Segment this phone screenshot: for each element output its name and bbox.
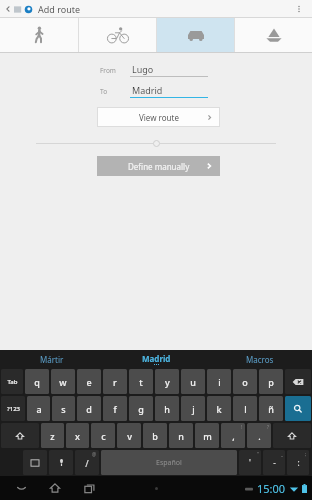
button[interactable]: Shift xyxy=(273,423,311,448)
staticText: e xyxy=(86,376,92,388)
button[interactable]: Shift xyxy=(1,423,39,448)
button[interactable]: : xyxy=(287,450,309,475)
staticText: j xyxy=(192,403,195,415)
button[interactable]: b xyxy=(143,423,167,448)
staticText: c xyxy=(101,430,106,442)
button[interactable]: Español xyxy=(101,450,237,475)
staticText: z xyxy=(50,430,55,442)
staticText: p xyxy=(268,376,274,388)
button[interactable]: n xyxy=(169,423,193,448)
staticText: From xyxy=(100,66,116,75)
staticText: ! xyxy=(241,424,243,430)
button[interactable]: View route xyxy=(97,107,220,127)
staticText: : xyxy=(297,457,300,468)
button[interactable]: Back xyxy=(4,5,12,13)
staticText: w xyxy=(59,376,67,388)
button[interactable]: j xyxy=(181,396,205,421)
button[interactable]: Search xyxy=(285,396,311,421)
button[interactable]: / xyxy=(75,450,99,475)
staticText: / xyxy=(85,457,89,469)
button[interactable]: i xyxy=(207,369,231,394)
button[interactable]: a xyxy=(27,396,50,421)
button[interactable]: Driving xyxy=(157,18,234,52)
staticText: Español xyxy=(156,458,182,468)
staticText: o xyxy=(242,376,248,388)
staticText: Madrid xyxy=(142,353,171,364)
button[interactable]: Switch keyboard xyxy=(23,450,47,475)
button[interactable]: ñ xyxy=(259,396,283,421)
staticText: ?123 xyxy=(7,405,20,413)
staticText: s xyxy=(61,403,66,415)
button[interactable]: Backspace xyxy=(285,369,311,394)
button[interactable]: Walking xyxy=(0,18,78,52)
button[interactable]: x xyxy=(66,423,89,448)
button[interactable]: r xyxy=(103,369,127,394)
button[interactable]: Home xyxy=(44,477,66,499)
button[interactable]: l xyxy=(233,396,257,421)
button[interactable]: w xyxy=(51,369,75,394)
button[interactable]: u xyxy=(181,369,205,394)
button[interactable]: o xyxy=(233,369,257,394)
staticText: Macros xyxy=(246,354,274,365)
staticText: n xyxy=(178,430,184,442)
staticText: Tab xyxy=(7,378,18,386)
staticText: ' xyxy=(249,457,251,468)
button[interactable]: ' xyxy=(239,450,261,475)
staticText: l xyxy=(244,403,247,415)
staticText: Lugo xyxy=(132,63,154,75)
staticText: , xyxy=(232,430,235,442)
button[interactable]: m xyxy=(195,423,219,448)
staticText: b xyxy=(152,430,158,442)
staticText: View route xyxy=(139,112,179,123)
staticText: t xyxy=(139,376,143,388)
staticText: ? xyxy=(267,424,269,430)
button[interactable]: Boat xyxy=(235,18,312,52)
button[interactable]: - xyxy=(263,450,285,475)
staticText: r xyxy=(113,376,117,388)
staticText: ; xyxy=(305,451,307,457)
staticText: @ xyxy=(92,451,97,457)
button[interactable]: ?123 xyxy=(1,396,25,421)
staticText: Mártir xyxy=(40,354,64,365)
staticText: f xyxy=(113,403,117,415)
staticText: ñ xyxy=(268,403,274,415)
staticText: a xyxy=(36,403,42,415)
button[interactable]: More options xyxy=(290,0,308,18)
staticText: k xyxy=(216,403,222,415)
button[interactable]: d xyxy=(77,396,101,421)
button[interactable]: Recent apps xyxy=(78,477,100,499)
button[interactable]: k xyxy=(207,396,231,421)
button[interactable]: Macros xyxy=(208,350,312,368)
button[interactable]: p xyxy=(259,369,283,394)
button[interactable]: , xyxy=(221,423,245,448)
staticText: m xyxy=(203,430,212,442)
button[interactable]: z xyxy=(41,423,64,448)
button[interactable]: Mártir xyxy=(0,350,104,368)
button[interactable]: Voice input xyxy=(49,450,73,475)
staticText: u xyxy=(190,376,196,388)
button[interactable]: q xyxy=(25,369,49,394)
staticText: y xyxy=(165,376,170,388)
button[interactable]: c xyxy=(91,423,115,448)
button[interactable]: Define manually xyxy=(97,156,220,176)
button[interactable]: . xyxy=(247,423,271,448)
button[interactable]: g xyxy=(129,396,153,421)
staticText: g xyxy=(138,403,144,415)
staticText: " xyxy=(257,451,259,457)
button[interactable]: Madrid xyxy=(104,350,208,368)
button[interactable]: Hide keyboard xyxy=(10,477,32,499)
staticText: 15:00 xyxy=(257,481,286,496)
button[interactable]: t xyxy=(129,369,153,394)
staticText: - xyxy=(273,457,276,468)
button[interactable]: y xyxy=(155,369,179,394)
button[interactable]: s xyxy=(52,396,75,421)
button[interactable]: f xyxy=(103,396,127,421)
button[interactable]: h xyxy=(155,396,179,421)
button[interactable]: Tab xyxy=(1,369,23,394)
button[interactable]: v xyxy=(117,423,141,448)
button[interactable]: Cycling xyxy=(79,18,156,52)
staticText: q xyxy=(34,376,40,388)
button[interactable]: e xyxy=(77,369,101,394)
staticText: To xyxy=(100,87,108,96)
staticText: Add route xyxy=(38,3,81,15)
